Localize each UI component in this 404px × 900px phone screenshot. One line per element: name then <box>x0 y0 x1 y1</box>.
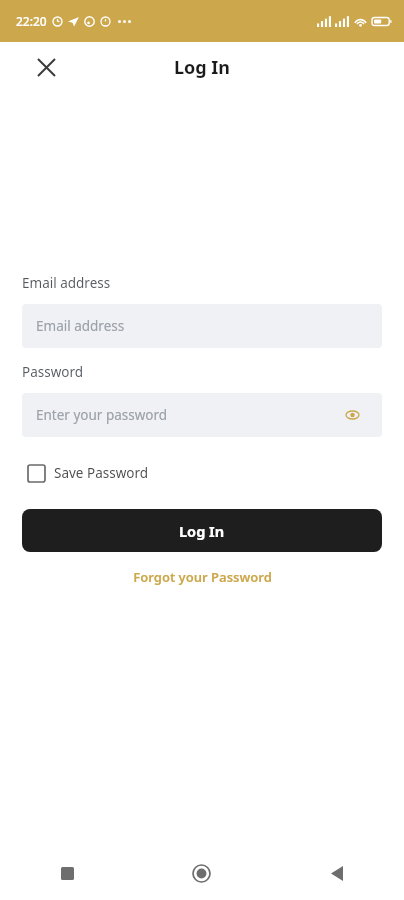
staticText: Forgot your Password <box>133 568 272 586</box>
button[interactable]: Close <box>26 47 66 87</box>
button[interactable]: Recent apps <box>0 846 134 900</box>
staticText: Email address <box>22 274 111 292</box>
staticText: Password <box>22 363 84 381</box>
staticText: 22:20 <box>16 13 47 29</box>
button[interactable]: Show password <box>340 403 364 427</box>
button[interactable]: Home <box>134 846 269 900</box>
button[interactable]: Email address <box>22 304 382 348</box>
button[interactable]: Enter your password <box>22 393 382 437</box>
staticText: Email address <box>36 317 125 335</box>
button[interactable]: Back <box>269 846 404 900</box>
button[interactable]: Forgot your Password <box>22 564 382 590</box>
staticText: Enter your password <box>36 406 168 424</box>
staticText: Save Password <box>54 464 149 482</box>
button[interactable]: Log In <box>22 509 382 552</box>
staticText: Log In <box>179 521 225 541</box>
button[interactable]: Save Password <box>22 460 155 486</box>
staticText: Log In <box>174 55 231 80</box>
